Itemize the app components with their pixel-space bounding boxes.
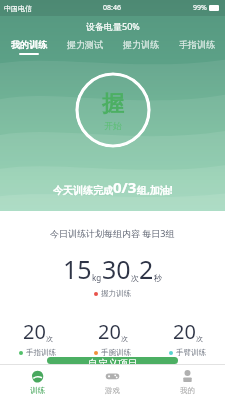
staticText: 握力训练	[101, 289, 131, 298]
staticText: 今天训练完成	[53, 184, 113, 197]
staticText: 手腕训练	[101, 348, 131, 357]
staticText: 组,加油!	[137, 183, 173, 197]
button[interactable]: 20	[75, 318, 150, 357]
staticText: 次	[121, 334, 128, 343]
button[interactable]: 握	[75, 72, 151, 148]
staticText: 开始	[104, 120, 122, 131]
staticText: 握	[102, 90, 124, 118]
button[interactable]: 我的	[150, 364, 225, 400]
staticText: 训练	[30, 386, 45, 395]
button[interactable]: 握力测试	[57, 36, 113, 58]
staticText: 20	[98, 318, 121, 345]
staticText: 中国电信	[4, 4, 32, 13]
staticText: 99%	[193, 3, 207, 13]
button[interactable]: 我的训练	[0, 36, 57, 58]
staticText: 游戏	[105, 386, 120, 395]
staticText: 次	[131, 273, 139, 283]
staticText: kg	[92, 272, 102, 283]
staticText: 我的训练	[11, 39, 47, 50]
staticText: 08:46	[103, 3, 121, 13]
staticText: 次	[46, 334, 53, 343]
staticText: 20	[23, 318, 46, 345]
staticText: 自定义项目	[88, 357, 138, 364]
staticText: 15	[63, 252, 92, 286]
staticText: 设备电量50%	[86, 20, 140, 32]
staticText: 我的	[180, 386, 195, 395]
staticText: 30	[102, 252, 131, 286]
button[interactable]: 20	[150, 318, 225, 357]
staticText: 20	[173, 318, 196, 345]
button[interactable]: 游戏	[75, 364, 150, 400]
staticText: 手臂训练	[176, 348, 206, 357]
button[interactable]: 握力训练	[113, 36, 169, 58]
button[interactable]: 20	[0, 318, 75, 357]
staticText: 握力测试	[67, 39, 103, 50]
staticText: 手指训练	[26, 348, 56, 357]
staticText: 今日训练计划每组内容 每日3组	[50, 227, 175, 239]
staticText: 0/3	[113, 177, 137, 197]
staticText: 手指训练	[179, 39, 215, 50]
button[interactable]: 手指训练	[169, 36, 225, 58]
button[interactable]: 自定义项目	[47, 357, 178, 364]
staticText: 2	[139, 252, 154, 286]
button[interactable]: 训练	[0, 364, 75, 400]
staticText: 次	[196, 334, 203, 343]
staticText: 握力训练	[123, 39, 159, 50]
staticText: 秒	[154, 273, 162, 283]
